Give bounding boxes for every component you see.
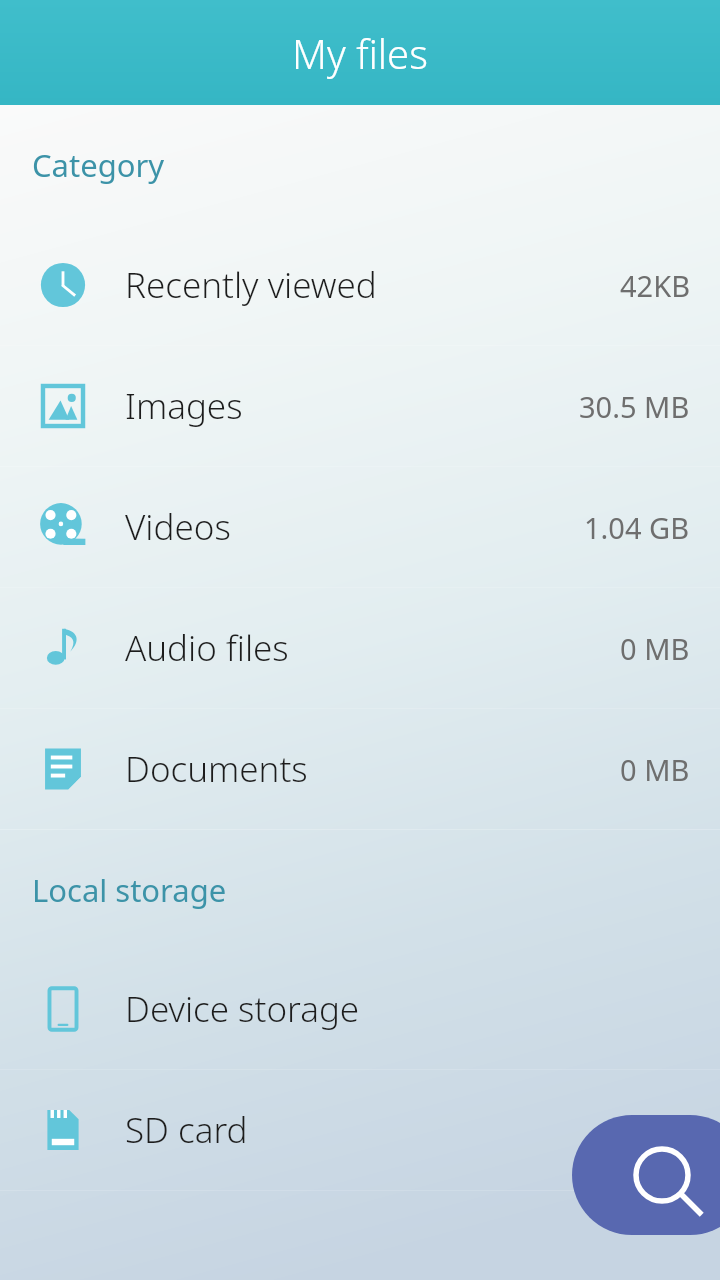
staticText: 30.5 MB bbox=[579, 387, 690, 426]
staticText: Images bbox=[125, 382, 243, 430]
button[interactable]: Videos bbox=[0, 467, 720, 587]
staticText: Recently viewed bbox=[125, 261, 377, 309]
staticText: 0 MB bbox=[620, 750, 690, 789]
button[interactable]: Documents bbox=[0, 709, 720, 829]
staticText: 1.04 GB bbox=[584, 508, 690, 547]
staticText: 42KB bbox=[620, 266, 690, 305]
staticText: Category bbox=[32, 144, 165, 186]
button[interactable]: SD card bbox=[0, 1070, 720, 1190]
staticText: Videos bbox=[125, 503, 231, 551]
button[interactable]: Audio files bbox=[0, 588, 720, 708]
staticText: Device storage bbox=[125, 985, 360, 1033]
button[interactable]: Search bbox=[572, 1115, 720, 1235]
button[interactable]: Recently viewed bbox=[0, 225, 720, 345]
staticText: Audio files bbox=[125, 624, 289, 672]
staticText: SD card bbox=[125, 1106, 248, 1154]
staticText: Local storage bbox=[32, 869, 227, 911]
staticText: Documents bbox=[125, 745, 308, 793]
staticText: 0 MB bbox=[620, 629, 690, 668]
button[interactable]: Images bbox=[0, 346, 720, 466]
staticText: My files bbox=[292, 26, 428, 80]
button[interactable]: Device storage bbox=[0, 949, 720, 1069]
